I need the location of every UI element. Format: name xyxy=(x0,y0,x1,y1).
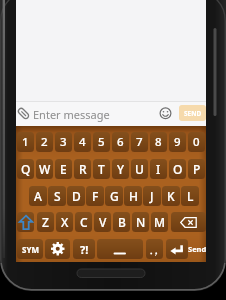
staticText: U xyxy=(135,161,144,177)
staticText: I xyxy=(156,161,161,177)
button[interactable]: M xyxy=(151,212,168,232)
button[interactable]: 0 xyxy=(188,132,205,152)
button[interactable] xyxy=(146,239,163,259)
button[interactable]: O xyxy=(169,159,186,179)
button[interactable]: F xyxy=(86,186,104,206)
staticText: A xyxy=(34,188,42,204)
staticText: V xyxy=(99,214,107,230)
button[interactable] xyxy=(45,239,70,259)
button[interactable]: P xyxy=(188,159,205,179)
staticText: SYM xyxy=(22,244,39,255)
staticText: T xyxy=(98,161,105,177)
staticText: Q xyxy=(21,161,31,177)
staticText: R xyxy=(79,161,87,177)
button[interactable]: 8 xyxy=(150,132,167,152)
button[interactable]: C xyxy=(75,212,92,232)
button[interactable] xyxy=(17,212,34,232)
button[interactable]: 4 xyxy=(74,132,91,152)
button[interactable]: 2 xyxy=(36,132,53,152)
staticText: Z xyxy=(42,214,49,230)
button[interactable]: ?! xyxy=(73,239,95,259)
button[interactable]: Z xyxy=(37,212,54,232)
button[interactable]: 9 xyxy=(169,132,186,152)
button[interactable]: B xyxy=(113,212,130,232)
staticText: 5 xyxy=(98,134,105,150)
staticText: 3 xyxy=(60,134,67,150)
staticText: C xyxy=(80,214,88,230)
staticText: W xyxy=(39,161,51,177)
button[interactable]: 3 xyxy=(55,132,72,152)
staticText: J xyxy=(150,188,154,204)
button[interactable]: 6 xyxy=(112,132,129,152)
button[interactable]: G xyxy=(105,186,123,206)
staticText: 8 xyxy=(155,134,162,150)
staticText: SEND xyxy=(184,109,202,118)
staticText: P xyxy=(193,161,201,177)
button[interactable]: U xyxy=(131,159,148,179)
staticText: E xyxy=(60,161,67,177)
button[interactable] xyxy=(166,239,188,259)
button[interactable]: R xyxy=(74,159,91,179)
button[interactable]: K xyxy=(162,186,180,206)
button[interactable]: I xyxy=(150,159,167,179)
button[interactable]: D xyxy=(67,186,85,206)
staticText: 1 xyxy=(22,134,29,150)
staticText: M xyxy=(154,214,166,230)
staticText: 2 xyxy=(41,134,48,150)
button[interactable]: X xyxy=(56,212,73,232)
staticText: D xyxy=(72,188,81,204)
staticText: 7 xyxy=(136,134,143,150)
staticText: O xyxy=(173,161,183,177)
button[interactable]: A xyxy=(29,186,47,206)
staticText: G xyxy=(110,188,119,204)
staticText: 9 xyxy=(174,134,181,150)
button[interactable]: Send xyxy=(188,239,206,259)
staticText: K xyxy=(167,188,175,204)
button[interactable]: 1 xyxy=(17,132,34,152)
button[interactable]: SYM xyxy=(17,239,43,259)
button[interactable] xyxy=(97,239,143,259)
staticText: S xyxy=(54,188,61,204)
button[interactable] xyxy=(171,212,206,232)
button[interactable]: S xyxy=(48,186,66,206)
button[interactable]: Q xyxy=(17,159,34,179)
button[interactable]: V xyxy=(94,212,111,232)
staticText: L xyxy=(187,188,194,204)
staticText: Y xyxy=(117,161,125,177)
button[interactable]: N xyxy=(132,212,149,232)
button[interactable]: Enter message xyxy=(16,101,206,126)
button[interactable]: L xyxy=(181,186,199,206)
staticText: Send xyxy=(188,244,206,254)
button[interactable]: SEND xyxy=(179,105,206,121)
staticText: H xyxy=(129,188,138,204)
button[interactable]: T xyxy=(93,159,110,179)
button[interactable]: W xyxy=(36,159,53,179)
button[interactable]: 7 xyxy=(131,132,148,152)
staticText: N xyxy=(136,214,146,230)
button[interactable]: E xyxy=(55,159,72,179)
staticText: Enter message xyxy=(33,107,110,122)
staticText: ?! xyxy=(80,242,89,257)
staticText: 4 xyxy=(79,134,86,150)
button[interactable]: 5 xyxy=(93,132,110,152)
staticText: X xyxy=(61,214,69,230)
button[interactable]: Y xyxy=(112,159,129,179)
button[interactable]: J xyxy=(143,186,161,206)
staticText: 6 xyxy=(117,134,124,150)
staticText: F xyxy=(92,188,99,204)
staticText: 0 xyxy=(193,134,200,150)
staticText: B xyxy=(118,214,126,230)
button[interactable]: H xyxy=(124,186,142,206)
